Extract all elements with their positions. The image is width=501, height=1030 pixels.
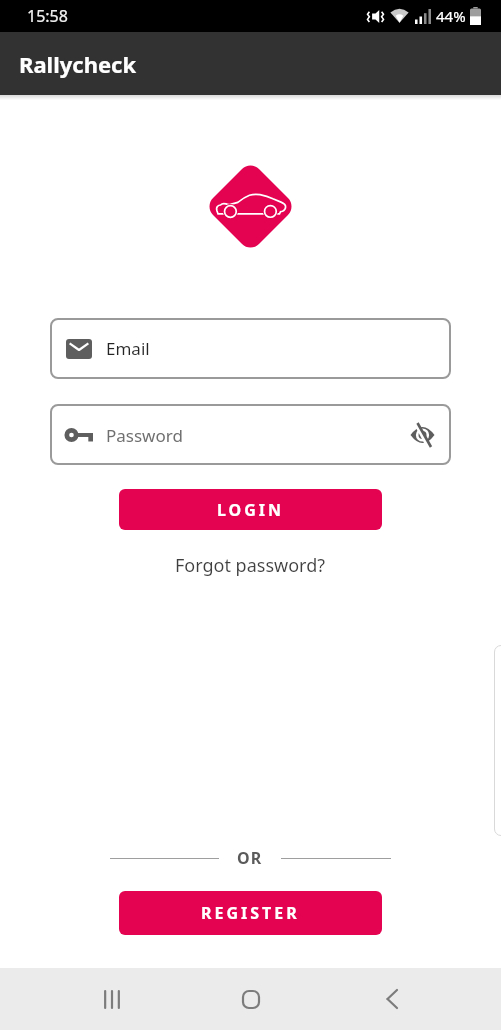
staticText: Rallycheck [19,49,137,79]
staticText: LOGIN [217,499,285,521]
staticText: OR [237,847,263,869]
button[interactable]: LOGIN [119,489,382,530]
staticText: Password [106,424,183,447]
staticText: Forgot password? [175,553,326,578]
button[interactable] [406,421,439,449]
button[interactable] [361,971,421,1027]
staticText: Email [106,337,150,360]
button[interactable]: Forgot password? [171,549,330,582]
staticText: 44% [436,6,466,26]
button[interactable] [82,971,142,1027]
staticText: REGISTER [201,902,300,924]
button[interactable]: REGISTER [119,891,382,935]
staticText: 15:58 [27,5,68,27]
button[interactable]: Password [50,404,451,465]
button[interactable]: Email [50,318,451,379]
button[interactable] [221,971,281,1027]
